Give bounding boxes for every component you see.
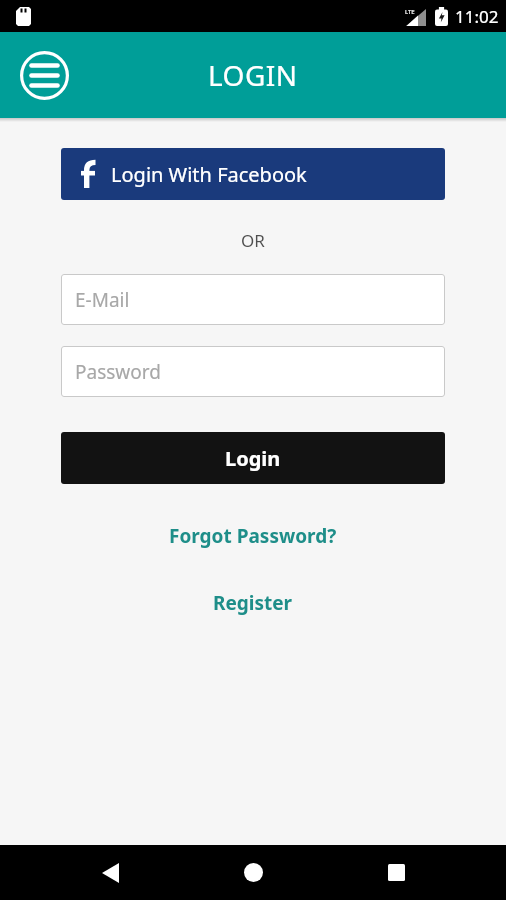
staticText: Login With Facebook bbox=[111, 161, 307, 188]
button[interactable]: Login With Facebook bbox=[61, 148, 445, 200]
staticText: LOGIN bbox=[208, 56, 298, 94]
button[interactable]: Login bbox=[61, 432, 445, 484]
button[interactable] bbox=[20, 51, 69, 100]
button[interactable]: Forgot Password? bbox=[169, 523, 337, 549]
button[interactable] bbox=[225, 845, 281, 900]
button[interactable]: Register bbox=[213, 590, 293, 616]
button[interactable] bbox=[368, 845, 424, 900]
button[interactable]: Password bbox=[61, 346, 445, 397]
staticText: 11:02 bbox=[455, 5, 499, 28]
button[interactable]: E-Mail bbox=[61, 274, 445, 325]
staticText: OR bbox=[241, 229, 265, 252]
button[interactable] bbox=[82, 845, 138, 900]
staticText: E-Mail bbox=[75, 287, 130, 313]
staticText: Forgot Password? bbox=[169, 523, 337, 549]
staticText: Password bbox=[75, 359, 161, 385]
staticText: Login bbox=[225, 445, 281, 472]
staticText: Register bbox=[213, 590, 293, 616]
staticText: LTE bbox=[405, 8, 415, 16]
